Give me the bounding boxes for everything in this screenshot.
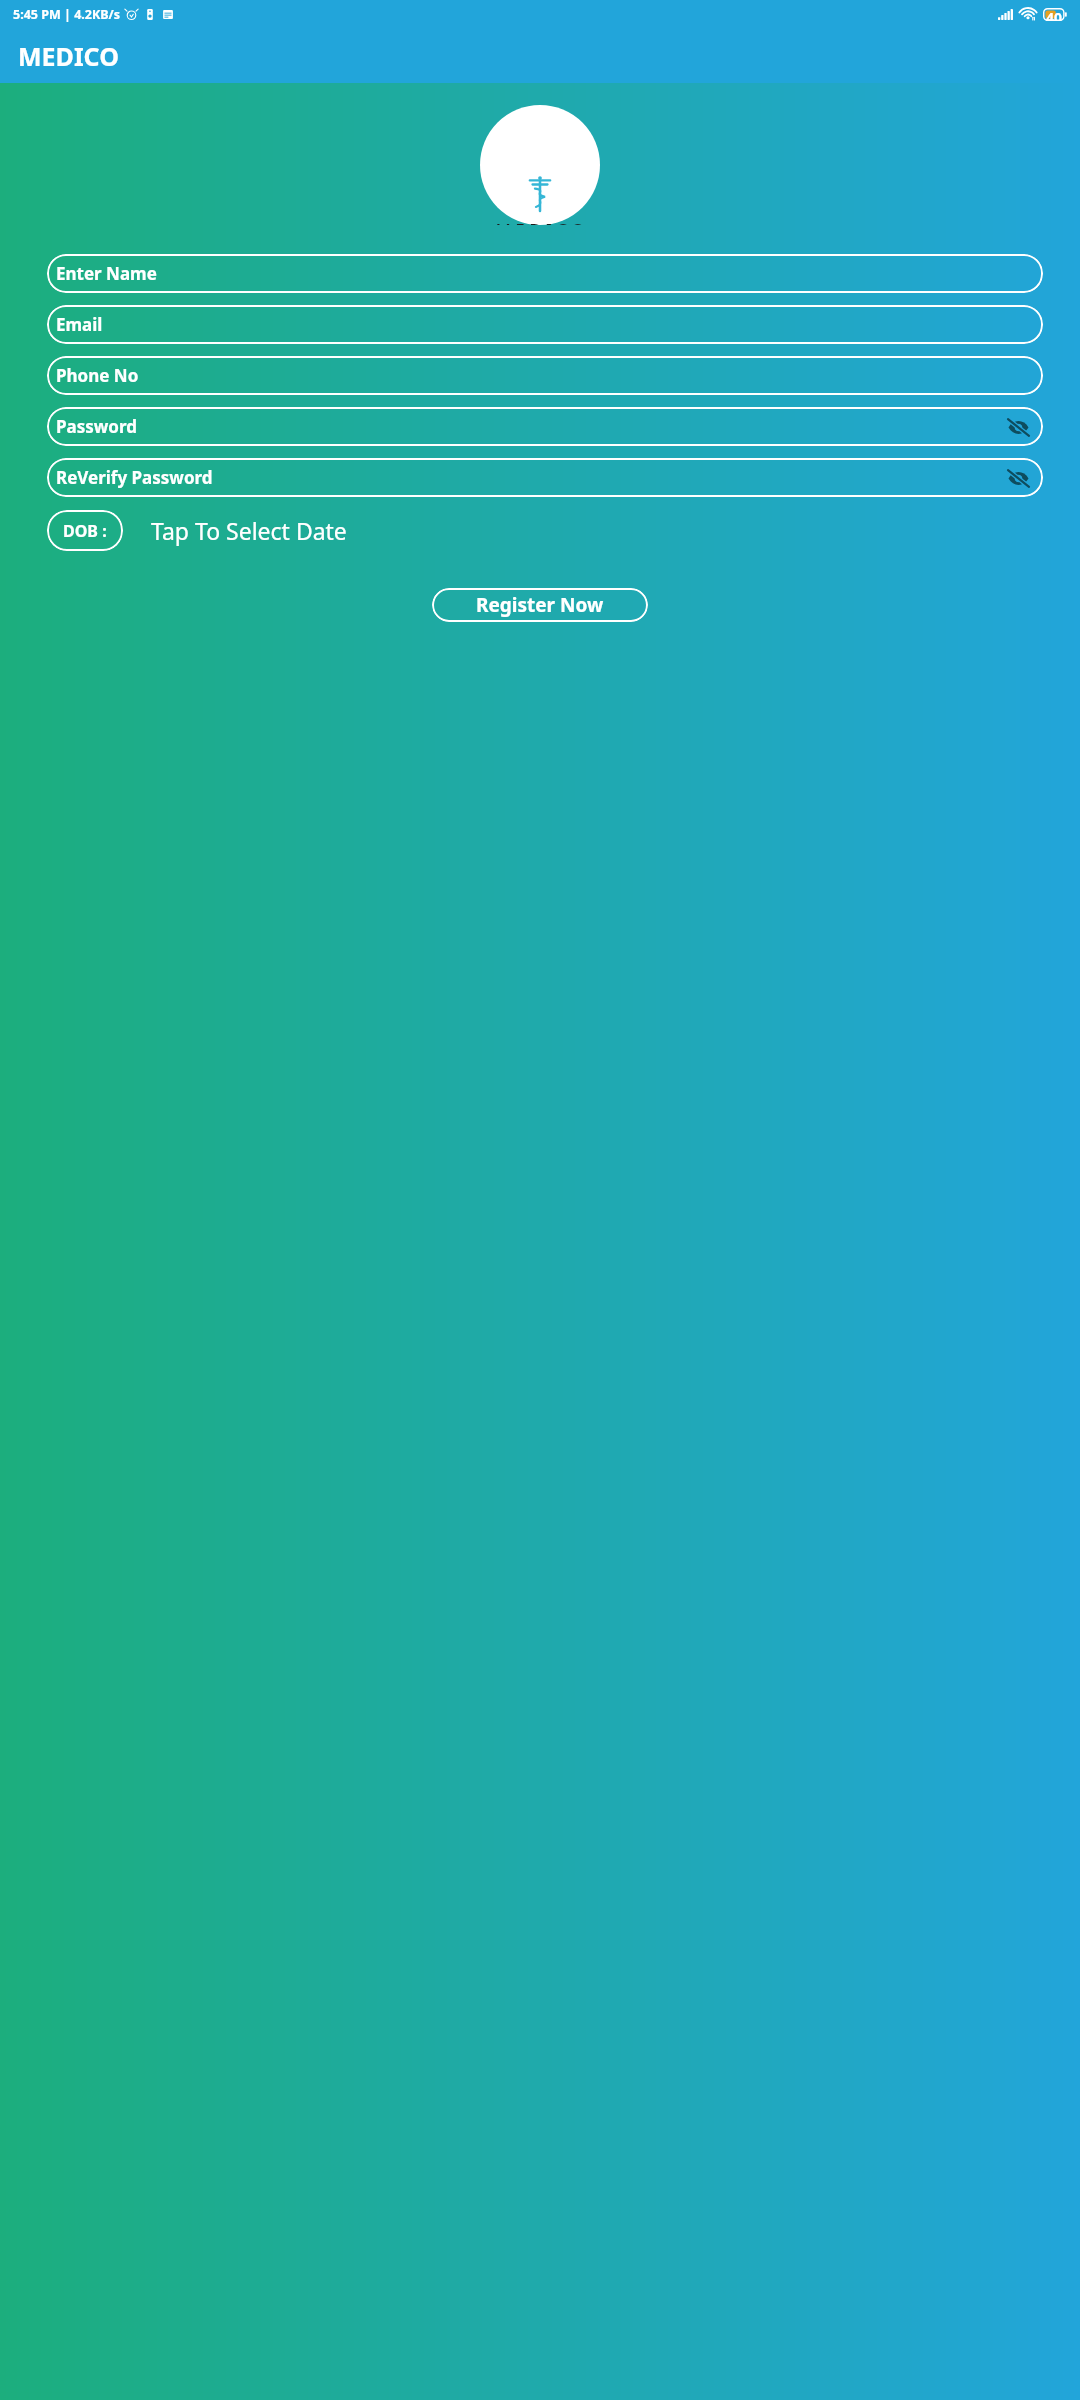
staticText: Email bbox=[56, 313, 103, 336]
button[interactable]: Toggle password visibility bbox=[1003, 412, 1033, 442]
staticText: Enter Name bbox=[56, 262, 157, 285]
button[interactable]: Phone No bbox=[47, 356, 1043, 395]
button[interactable]: Enter Name bbox=[47, 254, 1043, 293]
button[interactable]: Password bbox=[47, 407, 1043, 446]
staticText: Phone No bbox=[56, 364, 139, 387]
staticText: M E D I C O bbox=[495, 218, 585, 225]
button[interactable]: Register Now bbox=[432, 588, 648, 622]
button[interactable]: ReVerify Password bbox=[47, 458, 1043, 497]
button[interactable]: Toggle password visibility bbox=[1003, 463, 1033, 493]
button[interactable]: Tap To Select Date bbox=[151, 515, 347, 546]
staticText: 40 bbox=[1046, 8, 1063, 21]
staticText: Register Now bbox=[476, 592, 604, 618]
button[interactable]: Email bbox=[47, 305, 1043, 344]
staticText: MEDICO bbox=[18, 39, 119, 73]
staticText: ReVerify Password bbox=[56, 466, 213, 489]
staticText: 5:45 PM | 4.2KB/s bbox=[13, 6, 121, 23]
staticText: Tap To Select Date bbox=[151, 515, 347, 546]
button[interactable]: DOB : bbox=[47, 510, 123, 551]
staticText: Password bbox=[56, 415, 137, 438]
staticText: DOB : bbox=[63, 520, 107, 542]
